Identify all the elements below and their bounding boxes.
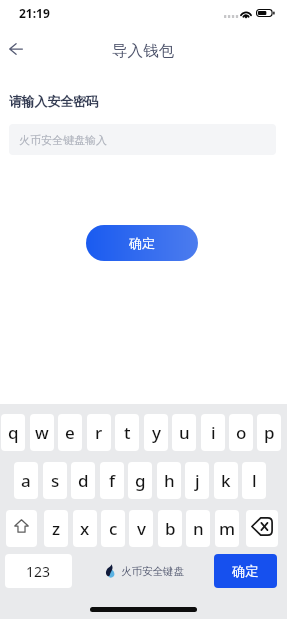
button[interactable]: 确定	[86, 225, 198, 261]
button[interactable]: v	[129, 510, 153, 547]
button[interactable]: c	[101, 510, 125, 547]
staticText: 21:19	[19, 5, 50, 21]
button[interactable]: t	[115, 414, 139, 451]
staticText: 确定	[232, 563, 259, 580]
staticText: g	[135, 469, 146, 492]
button[interactable]: g	[128, 462, 152, 499]
button[interactable]: w	[30, 414, 54, 451]
button[interactable]: x	[73, 510, 97, 547]
staticText: 火币安全键盘	[121, 565, 184, 578]
staticText: 123	[26, 562, 51, 581]
button[interactable]: p	[257, 414, 281, 451]
staticText: d	[78, 469, 89, 492]
button[interactable]: Shift	[6, 510, 37, 547]
staticText: o	[236, 421, 247, 444]
staticText: p	[264, 421, 275, 444]
button[interactable]: j	[185, 462, 209, 499]
staticText: t	[124, 421, 131, 444]
button[interactable]: z	[44, 510, 68, 547]
staticText: z	[52, 517, 61, 540]
staticText: 确定	[129, 235, 155, 251]
staticText: 火币安全键盘输入	[19, 133, 107, 147]
staticText: j	[195, 469, 200, 492]
staticText: f	[109, 469, 116, 492]
button[interactable]: a	[14, 462, 38, 499]
button[interactable]: Delete	[246, 510, 278, 547]
staticText: b	[165, 517, 176, 540]
staticText: v	[137, 517, 146, 540]
staticText: 请输入安全密码	[9, 94, 99, 110]
button[interactable]: m	[215, 510, 239, 547]
button[interactable]: e	[58, 414, 82, 451]
button[interactable]: i	[201, 414, 225, 451]
button[interactable]: d	[71, 462, 95, 499]
button[interactable]: b	[158, 510, 182, 547]
button[interactable]: r	[87, 414, 111, 451]
staticText: 导入钱包	[112, 41, 175, 61]
staticText: r	[95, 421, 103, 444]
staticText: i	[211, 421, 216, 444]
staticText: w	[35, 421, 49, 444]
staticText: q	[8, 421, 19, 444]
staticText: u	[179, 421, 190, 444]
button[interactable]: k	[214, 462, 238, 499]
staticText: s	[51, 469, 60, 492]
button[interactable]: y	[144, 414, 168, 451]
button[interactable]: u	[172, 414, 196, 451]
staticText: e	[65, 421, 75, 444]
button[interactable]: s	[43, 462, 67, 499]
staticText: h	[164, 469, 175, 492]
staticText: x	[80, 517, 90, 540]
staticText: y	[152, 421, 161, 444]
button[interactable]: h	[157, 462, 181, 499]
staticText: m	[219, 517, 236, 540]
staticText: n	[193, 517, 204, 540]
button[interactable]: 123	[5, 554, 72, 588]
button[interactable]: 火币安全键盘输入	[9, 124, 276, 155]
button[interactable]: o	[229, 414, 253, 451]
staticText: c	[109, 517, 118, 540]
staticText: a	[21, 469, 31, 492]
button[interactable]: q	[1, 414, 25, 451]
button[interactable]: Back	[0, 32, 33, 66]
button[interactable]: f	[100, 462, 124, 499]
staticText: l	[252, 469, 257, 492]
button[interactable]: n	[186, 510, 210, 547]
staticText: k	[221, 469, 231, 492]
button[interactable]: 确定	[214, 554, 277, 588]
button[interactable]: l	[242, 462, 266, 499]
